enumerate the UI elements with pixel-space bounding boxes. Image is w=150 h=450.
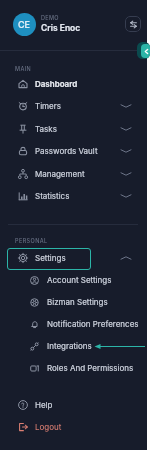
staticText: Statistics xyxy=(35,191,70,201)
staticText: Roles And Permissions xyxy=(47,363,134,373)
button[interactable]: Statistics xyxy=(0,185,147,207)
staticText: CE xyxy=(18,19,31,30)
button[interactable]: Account Settings xyxy=(0,269,147,291)
staticText: Bizman Settings xyxy=(47,297,108,307)
button[interactable]: Dashboard xyxy=(0,73,147,95)
button[interactable]: Roles And Permissions xyxy=(0,357,147,379)
staticText: Settings xyxy=(35,253,66,263)
staticText: Management xyxy=(35,169,85,179)
staticText: Timers xyxy=(35,101,62,111)
staticText: Dashboard xyxy=(35,79,78,89)
staticText: Cris Enoc xyxy=(41,23,81,33)
staticText: Passwords Vault xyxy=(35,146,98,156)
button[interactable]: Settings xyxy=(0,247,147,269)
staticText: Integrations xyxy=(47,341,92,351)
staticText: DEMO xyxy=(41,15,59,22)
staticText: Logout xyxy=(35,422,62,432)
button[interactable]: Notification Preferences xyxy=(0,313,147,335)
staticText: Notification Preferences xyxy=(47,319,139,329)
button[interactable]: Timers xyxy=(0,95,147,117)
button[interactable]: Logout xyxy=(0,416,147,438)
button[interactable]: Passwords Vault xyxy=(0,140,147,162)
button[interactable]: Bizman Settings xyxy=(0,291,147,313)
button[interactable]: Switch workspace xyxy=(125,16,141,32)
staticText: Tasks xyxy=(35,124,57,134)
button[interactable]: Integrations xyxy=(0,335,147,357)
staticText: Account Settings xyxy=(47,275,112,285)
button[interactable]: Collapse sidebar xyxy=(137,42,150,59)
button[interactable]: Management xyxy=(0,163,147,185)
staticText: MAIN xyxy=(15,66,32,73)
button[interactable]: Tasks xyxy=(0,118,147,140)
button[interactable]: Help xyxy=(0,394,147,416)
staticText: PERSONAL xyxy=(15,238,48,245)
staticText: Help xyxy=(35,400,53,410)
